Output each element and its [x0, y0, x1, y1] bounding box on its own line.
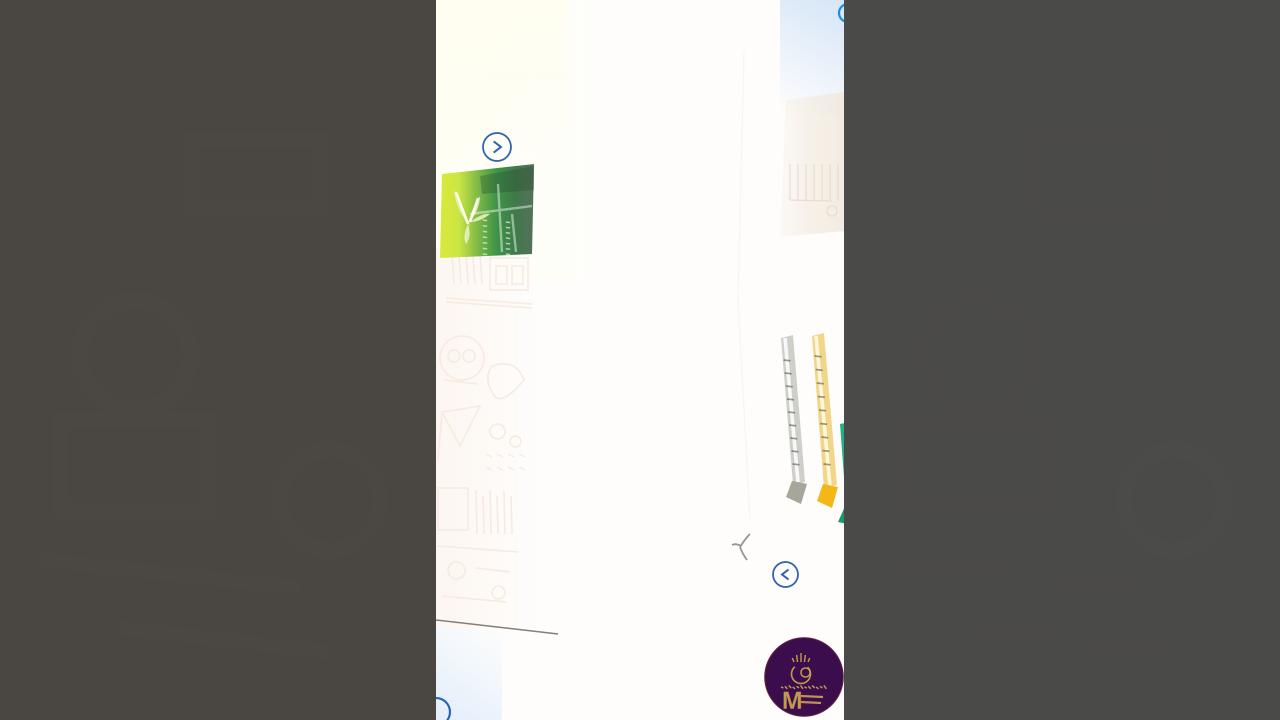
button[interactable]: Previous [773, 562, 798, 587]
staticText: M [781, 685, 802, 715]
button[interactable]: Mansah Makhmalia [765, 638, 843, 716]
button[interactable]: Next [483, 133, 511, 161]
